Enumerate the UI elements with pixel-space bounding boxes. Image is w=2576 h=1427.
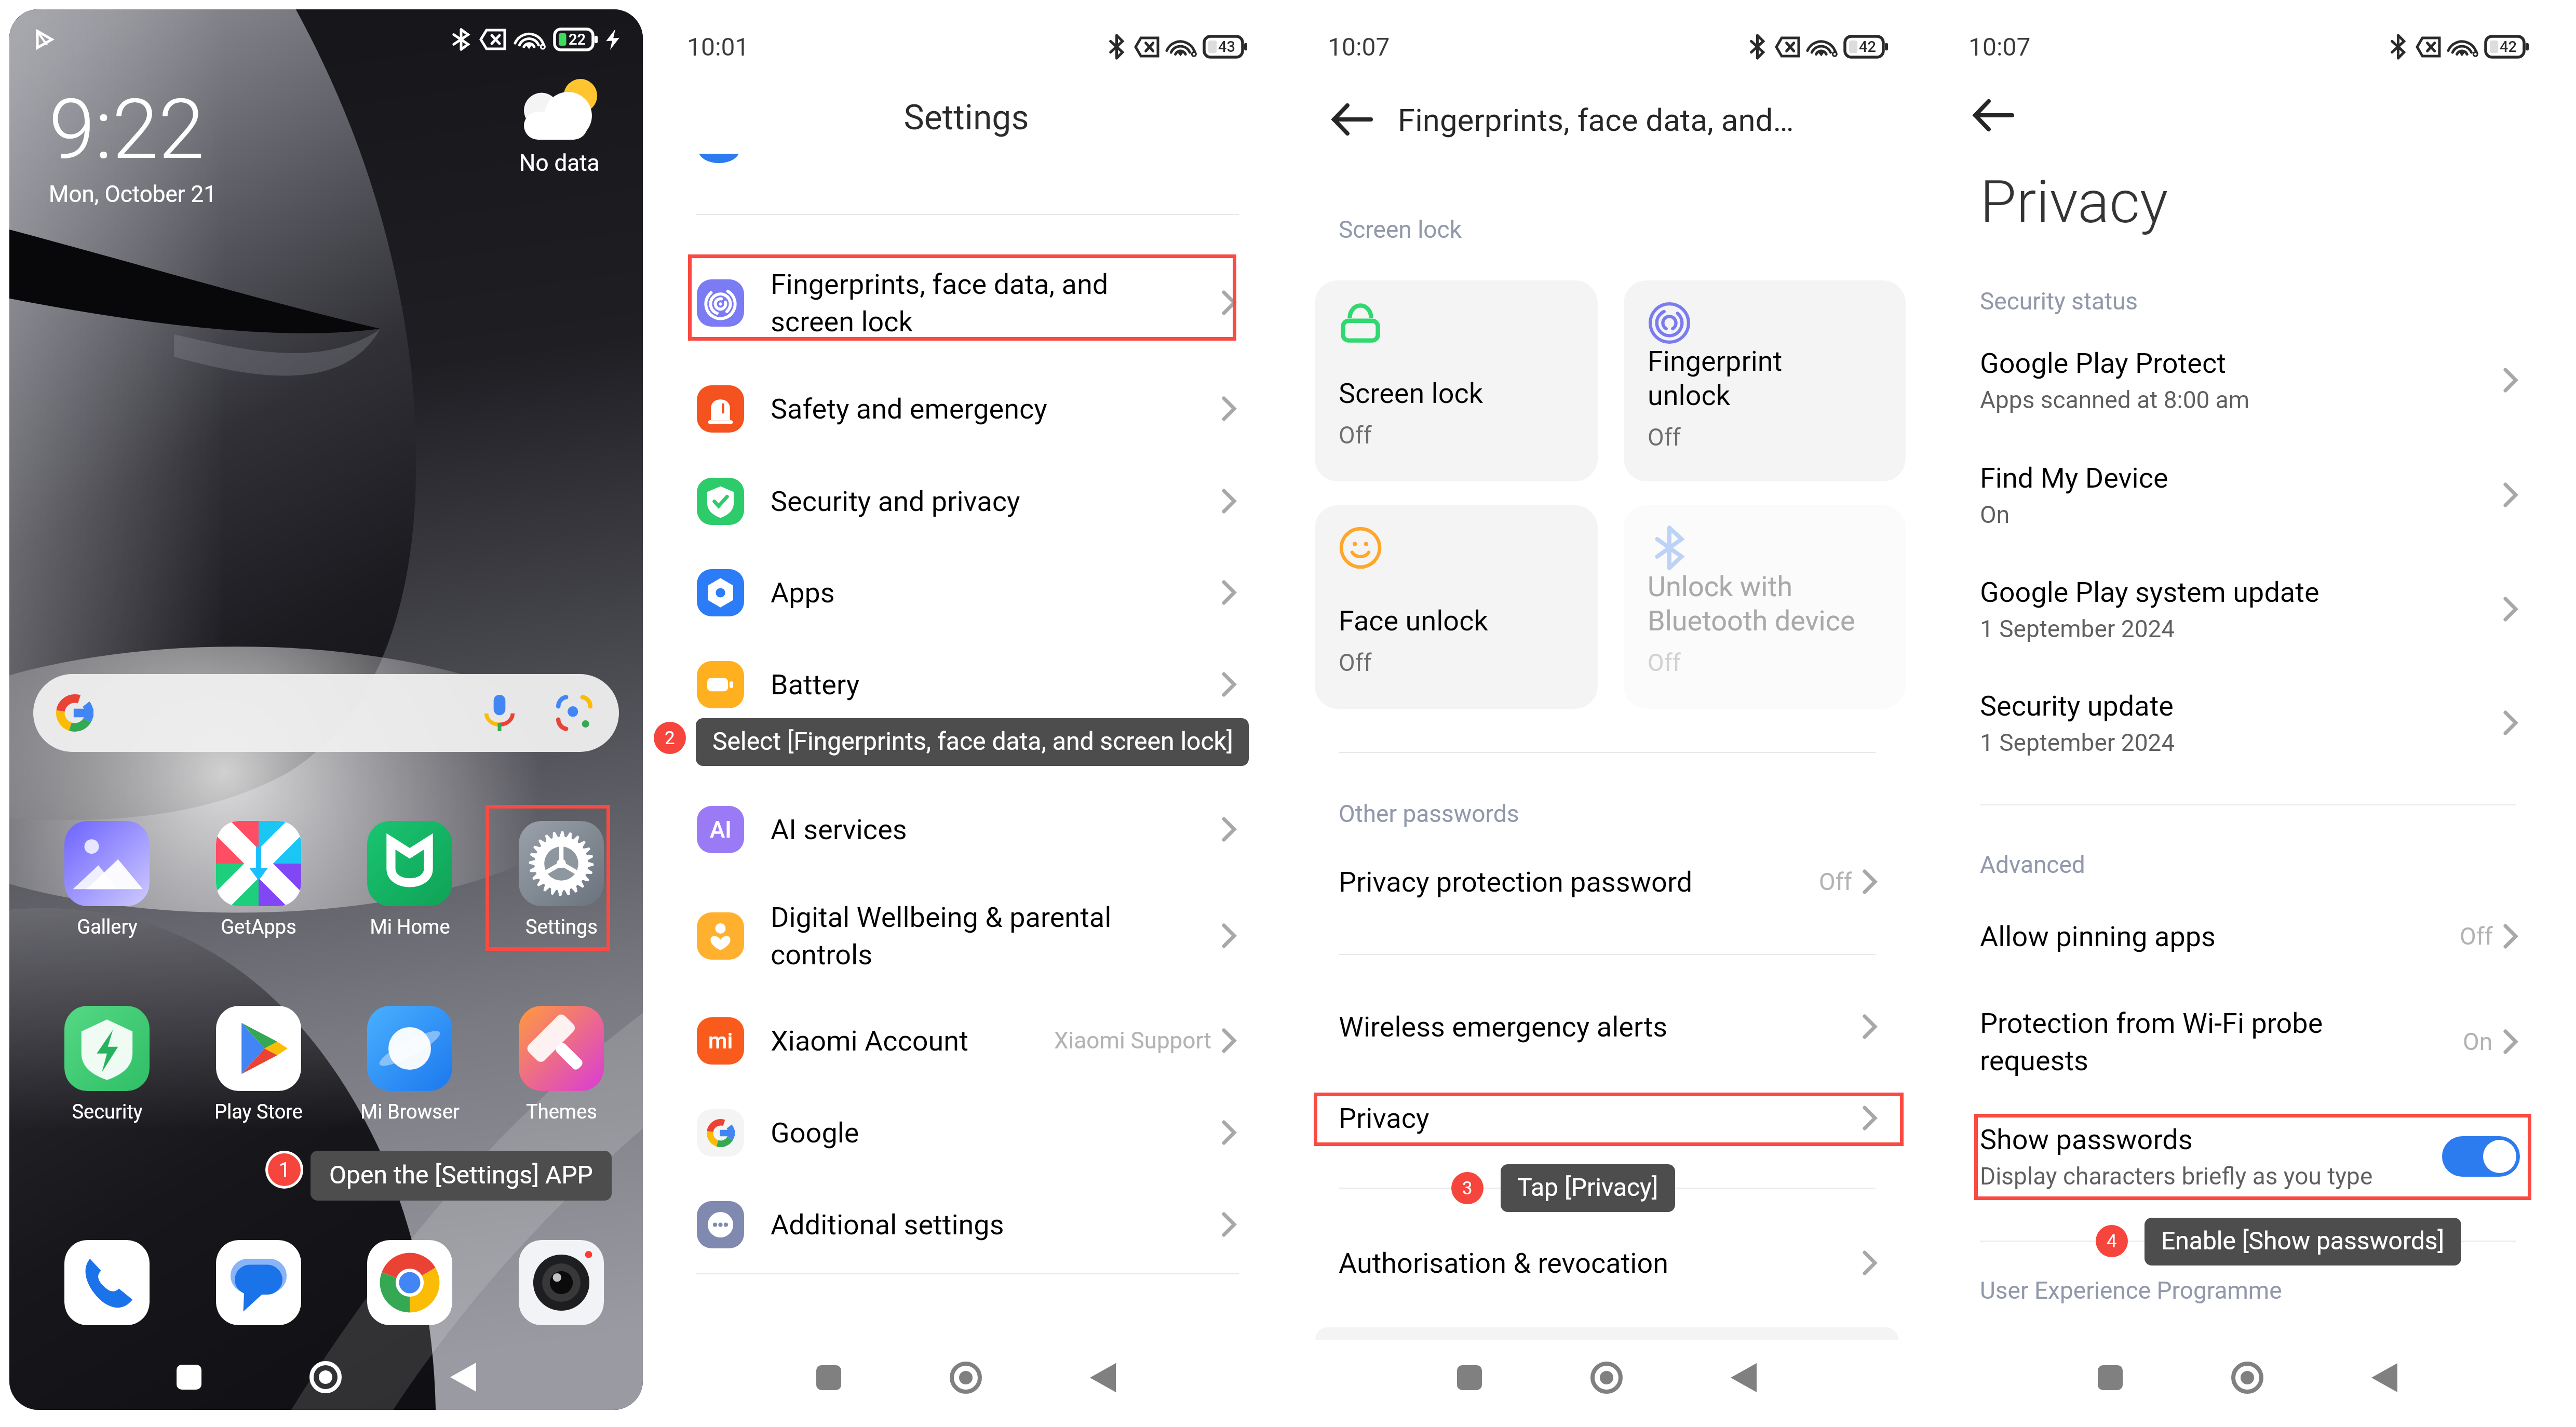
staticText: 10:01: [687, 32, 749, 61]
staticText: Off: [1648, 423, 1681, 449]
button[interactable]: Security and privacy: [646, 459, 1287, 544]
button[interactable]: Fingerprint unlock: [1624, 280, 1906, 481]
button[interactable]: Digital Wellbeing & parental controls: [646, 893, 1287, 978]
button[interactable]: Safety and emergency: [646, 366, 1287, 451]
button[interactable]: Home: [1575, 1347, 1638, 1409]
staticText: mi: [708, 1028, 733, 1054]
staticText: Fingerprints, face data, and screen lock: [771, 268, 1109, 338]
button[interactable]: Voice search: [479, 692, 520, 734]
staticText: Safety and emergency: [771, 393, 1047, 425]
staticText: Privacy protection password: [1339, 866, 1693, 898]
staticText: 1 September 2024: [1980, 729, 2175, 757]
button[interactable]: Mi Home: [358, 821, 462, 939]
button[interactable]: Additional settings: [646, 1182, 1287, 1267]
staticText: Mi Home: [370, 916, 450, 939]
button[interactable]: Fingerprints, face data, and screen lock: [646, 260, 1287, 345]
staticText: Off: [2460, 922, 2493, 950]
button[interactable]: Recents: [158, 1346, 220, 1408]
button[interactable]: Show passwords: [1927, 1115, 2568, 1198]
staticText: 10:07: [1328, 32, 1390, 61]
button[interactable]: Back: [432, 1346, 494, 1408]
button[interactable]: Mi Browser: [358, 1006, 462, 1124]
button[interactable]: Back: [1967, 89, 2019, 141]
button[interactable]: Apps: [646, 550, 1287, 635]
button[interactable]: Home: [2216, 1347, 2278, 1409]
staticText: Xiaomi Support: [1054, 1027, 1211, 1054]
staticText: Other passwords: [1339, 800, 1519, 828]
staticText: 10:07: [1968, 32, 2031, 61]
button[interactable]: Google Play system update: [1927, 565, 2568, 653]
staticText: Xiaomi Account: [771, 1025, 968, 1057]
button[interactable]: Themes: [509, 1006, 613, 1124]
button[interactable]: Authorisation & revocation: [1287, 1221, 1927, 1304]
staticText: Google Play Protect: [1980, 347, 2226, 380]
button[interactable]: [207, 1240, 311, 1325]
button[interactable]: Security update: [1927, 679, 2568, 767]
staticText: Advanced: [1980, 851, 2085, 879]
staticText: Wireless emergency alerts: [1339, 1011, 1668, 1043]
staticText: Unlock with Bluetooth device: [1648, 570, 1855, 637]
button[interactable]: Home: [294, 1346, 357, 1408]
button[interactable]: Find My Device: [1927, 451, 2568, 539]
staticText: Privacy: [1339, 1102, 1429, 1135]
staticText: 4: [2107, 1231, 2117, 1252]
button[interactable]: Screen lock: [1315, 280, 1598, 481]
staticText: 1 September 2024: [1980, 615, 2175, 643]
staticText: 1: [279, 1159, 290, 1181]
button[interactable]: Wireless emergency alerts: [1287, 985, 1927, 1068]
button[interactable]: Back: [2353, 1347, 2416, 1409]
button[interactable]: Back: [1072, 1347, 1134, 1409]
button[interactable]: Battery: [646, 642, 1287, 727]
button[interactable]: Protection from Wi-Fi probe requests: [1927, 1000, 2568, 1083]
button[interactable]: Settings: [509, 821, 613, 939]
staticText: 2: [665, 728, 675, 749]
button[interactable]: Face unlock: [1315, 505, 1598, 709]
staticText: Face unlock: [1339, 604, 1488, 637]
button[interactable]: Play Store: [207, 1006, 311, 1124]
button[interactable]: Google: [646, 1090, 1287, 1175]
button[interactable]: Recents: [1438, 1347, 1501, 1409]
button[interactable]: Privacy protection password: [1287, 840, 1927, 923]
button[interactable]: [358, 1240, 462, 1325]
button[interactable]: Allow pinning apps: [1927, 895, 2568, 978]
button[interactable]: Unlock with Bluetooth device: [1624, 505, 1906, 709]
button[interactable]: AI: [646, 787, 1287, 872]
button[interactable]: mi: [646, 998, 1287, 1083]
button[interactable]: Google search: [33, 674, 619, 752]
staticText: Show passwords: [1980, 1123, 2193, 1156]
button[interactable]: Back: [1712, 1347, 1775, 1409]
staticText: Screen lock: [1339, 216, 1462, 244]
staticText: Display characters briefly as you type: [1980, 1162, 2373, 1190]
staticText: Mon, October 21: [49, 181, 217, 208]
staticText: Google Play system update: [1980, 576, 2319, 609]
staticText: 22: [569, 31, 586, 48]
button[interactable]: Google Play Protect: [1927, 336, 2568, 424]
staticText: Protection from Wi-Fi probe requests: [1980, 1007, 2323, 1077]
staticText: 42: [2500, 38, 2517, 56]
button[interactable]: Home: [935, 1347, 997, 1409]
button[interactable]: Back: [1326, 93, 1378, 145]
button[interactable]: [55, 1240, 159, 1325]
staticText: Off: [1648, 649, 1681, 677]
button[interactable]: Privacy: [1287, 1076, 1927, 1160]
button[interactable]: Security: [55, 1006, 159, 1124]
staticText: 9:22: [49, 81, 205, 179]
button[interactable]: Show passwords toggle, on: [2442, 1136, 2520, 1177]
staticText: Screen lock: [1339, 377, 1483, 410]
staticText: Find My Device: [1980, 462, 2168, 494]
staticText: Off: [1339, 649, 1372, 677]
staticText: Tap [Privacy]: [1517, 1173, 1658, 1202]
button[interactable]: GetApps: [207, 821, 311, 939]
staticText: Privacy: [1980, 167, 2168, 237]
staticText: Apps: [771, 576, 835, 609]
staticText: Fingerprints, face data, and…: [1398, 102, 1794, 138]
button[interactable]: Recents: [2079, 1347, 2141, 1409]
button[interactable]: Google Lens: [554, 692, 595, 734]
staticText: Fingerprint unlock: [1648, 345, 1783, 412]
button[interactable]: [509, 1240, 613, 1325]
staticText: 43: [1218, 38, 1235, 56]
staticText: 3: [1462, 1178, 1473, 1199]
staticText: 42: [1859, 38, 1876, 56]
button[interactable]: Recents: [798, 1347, 860, 1409]
button[interactable]: Gallery: [55, 821, 159, 939]
